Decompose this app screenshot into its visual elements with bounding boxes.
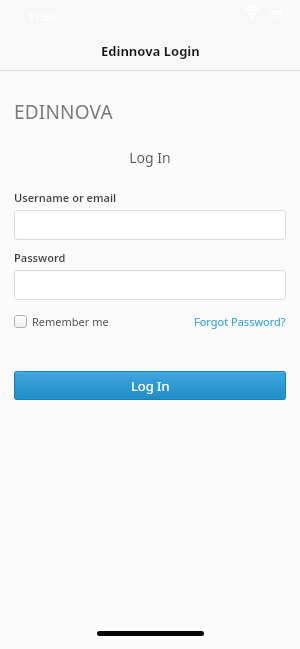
- staticText: Remember me: [32, 314, 109, 329]
- button[interactable]: [14, 270, 286, 300]
- button[interactable]: [14, 210, 286, 240]
- staticText: Edinnova Login: [101, 42, 200, 60]
- staticText: Username or email: [14, 190, 117, 205]
- button[interactable]: Log In: [14, 371, 286, 400]
- staticText: Log In: [131, 377, 170, 395]
- staticText: Password: [14, 250, 66, 265]
- button[interactable]: Remember me: [14, 314, 109, 329]
- button[interactable]: Forgot Password?: [194, 314, 286, 329]
- staticText: EDINNOVA: [14, 99, 113, 125]
- staticText: Log In: [14, 148, 286, 167]
